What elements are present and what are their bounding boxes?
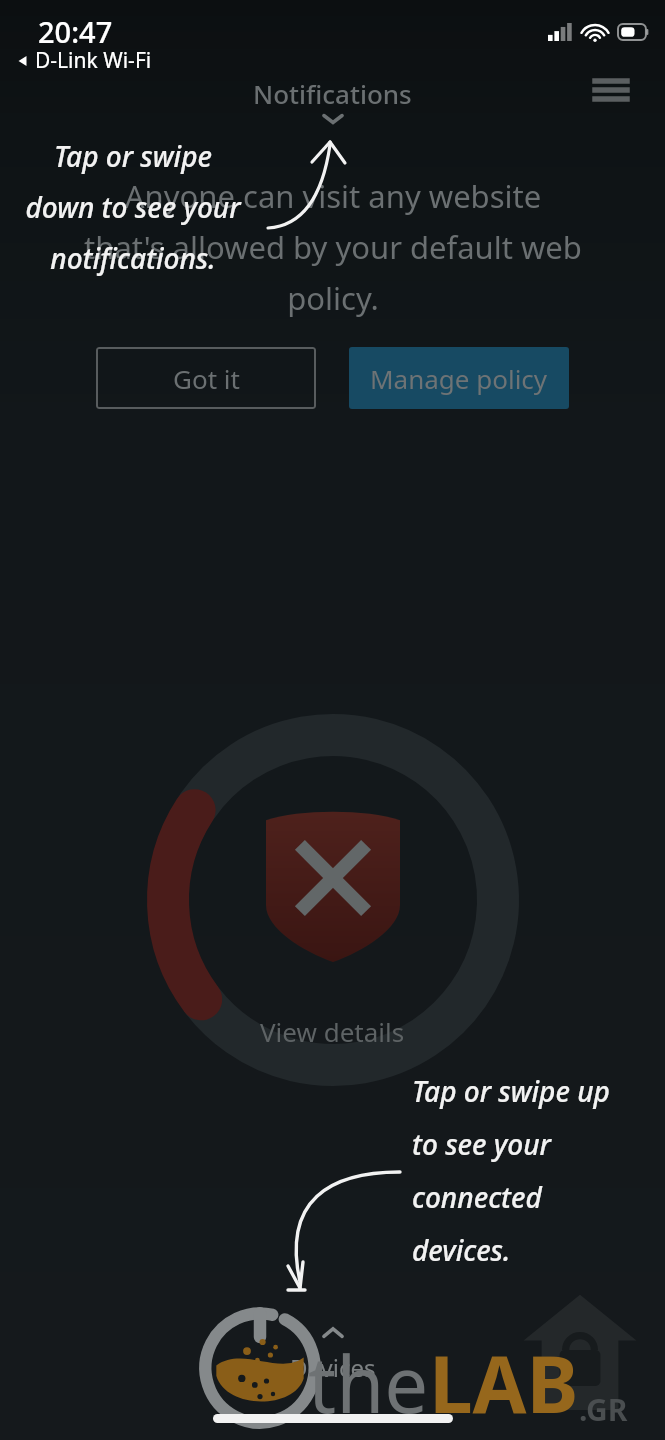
staticText: Manage policy (370, 361, 548, 396)
staticText: Got it (173, 361, 240, 396)
button[interactable]: Devices (270, 1322, 396, 1388)
staticText: Devices (290, 1351, 376, 1384)
staticText: Notifications (253, 76, 412, 111)
staticText: LAB (429, 1330, 579, 1436)
staticText: D-Link Wi-Fi (35, 46, 152, 75)
button[interactable]: Manage policy (349, 347, 569, 409)
other: Expand notifications (321, 112, 345, 126)
button[interactable]: View details (248, 1010, 417, 1053)
staticText: .GR (579, 1389, 628, 1430)
staticText: View details (260, 1014, 405, 1049)
staticText: Tap or swipe down to see your notificati… (8, 137, 258, 277)
button[interactable] (133, 700, 533, 1030)
button[interactable]: Notifications (237, 72, 428, 115)
staticText: the (308, 1330, 429, 1436)
button[interactable]: Got it (96, 347, 316, 409)
button[interactable]: Menu (587, 66, 635, 114)
staticText: Tap or swipe up to see your connected de… (412, 1072, 662, 1269)
staticText: 20:47 (38, 12, 113, 51)
staticText: Anyone can visit any website that's allo… (83, 175, 583, 319)
